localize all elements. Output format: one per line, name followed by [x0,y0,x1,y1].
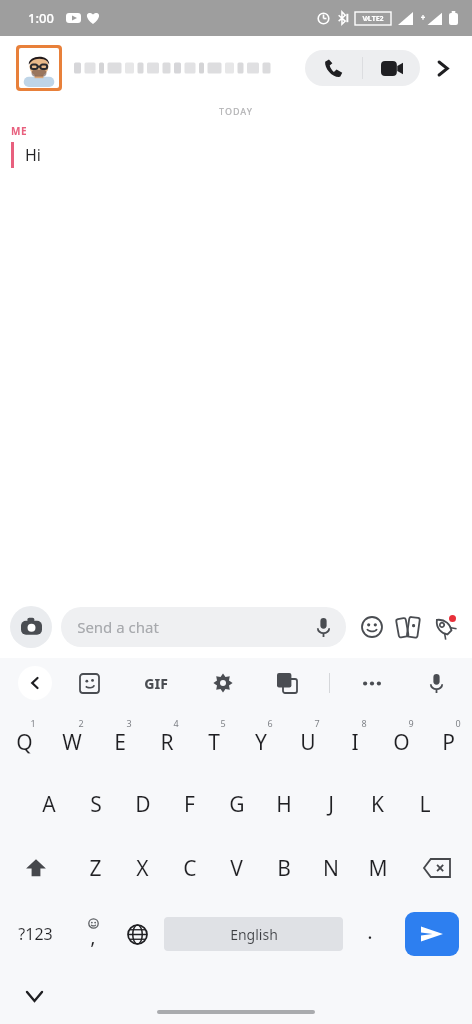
button[interactable]: Z [72,836,119,900]
button[interactable]: Back [18,666,52,700]
staticText: Y [255,728,267,757]
button[interactable]: Cards [390,609,426,645]
button[interactable]: Shift [0,836,72,900]
button[interactable]: GIF [133,663,179,703]
button[interactable]: 3 [96,708,143,772]
button[interactable]: 5 [190,708,237,772]
button[interactable]: Stickers [354,609,390,645]
button[interactable]: L [401,772,448,836]
button[interactable]: More options [352,663,392,703]
staticText: 6 [267,717,273,729]
button[interactable]: H [260,772,307,836]
staticText: S [90,790,102,819]
staticText: P [442,728,455,757]
staticText: 1:00 [28,9,54,27]
staticText: U [300,728,316,757]
staticText: GIF [144,674,168,693]
staticText: O [393,728,410,757]
staticText: H [276,790,292,819]
button[interactable]: Hide keyboard [16,978,52,1014]
staticText: TODAY [219,105,253,117]
button[interactable]: J [307,772,354,836]
staticText: ME [11,124,27,138]
staticText: R [160,728,174,757]
button[interactable]: ?123 [0,900,70,968]
staticText: English [230,925,278,944]
button[interactable]: 7 [284,708,331,772]
button[interactable]: Settings [203,663,243,703]
staticText: Q [16,728,33,757]
button[interactable]: 2 [48,708,96,772]
staticText: 5 [220,717,226,729]
staticText: Hi [25,144,41,166]
staticText: 2 [78,717,84,729]
staticText: ?123 [18,923,53,945]
button[interactable]: 0 [425,708,472,772]
button[interactable]: N [307,836,354,900]
button[interactable]: Profile avatar [19,48,59,88]
staticText: C [183,854,197,883]
staticText: B [277,854,291,883]
button[interactable]: English [164,917,343,951]
staticText: I [351,728,359,757]
staticText: 0 [455,717,461,729]
button[interactable]: 8 [331,708,378,772]
button[interactable]: X [119,836,166,900]
staticText: W [62,728,82,757]
staticText: 9 [408,717,414,729]
button[interactable]: Video call [363,50,420,86]
button[interactable]: Change language [115,900,160,968]
button[interactable]: 9 [378,708,425,772]
button[interactable]: B [260,836,307,900]
button[interactable]: Camera [10,606,52,648]
staticText: 1 [30,717,36,729]
button[interactable]: 6 [237,708,284,772]
staticText: X [136,854,149,883]
staticText: D [135,790,151,819]
button[interactable]: S [72,772,119,836]
staticText: 8 [361,717,367,729]
staticText: 7 [314,717,320,729]
button[interactable]: Emoji and comma [70,900,115,968]
staticText: J [328,790,334,819]
button[interactable]: V [213,836,260,900]
staticText: F [184,790,195,819]
staticText: Z [89,854,102,883]
button[interactable]: Rocket [426,609,462,645]
button[interactable]: D [119,772,166,836]
button[interactable]: G [213,772,260,836]
staticText: N [323,854,339,883]
button[interactable]: Translate [267,663,307,703]
staticText: 3 [126,717,132,729]
button[interactable]: K [354,772,401,836]
staticText: V⁄LTE2 [362,14,384,24]
staticText: . [367,918,373,945]
button[interactable]: Send [392,900,472,968]
button[interactable]: Voice call [305,50,362,86]
button[interactable]: Voice input [416,663,456,703]
staticText: L [419,790,431,819]
button[interactable]: Backspace [401,836,472,900]
staticText: Send a chat [77,617,159,637]
staticText: 4 [173,717,179,729]
staticText: , [90,923,96,950]
button[interactable]: C [166,836,213,900]
button[interactable]: 4 [143,708,190,772]
button[interactable]: 1 [0,708,48,772]
staticText: T [208,728,220,757]
staticText: E [114,728,126,757]
button[interactable]: Send a chat [61,607,346,647]
staticText: V [230,854,243,883]
button[interactable]: . [347,900,392,968]
button[interactable]: Sticker [69,663,109,703]
button[interactable]: F [166,772,213,836]
staticText: G [229,790,245,819]
button[interactable]: M [354,836,401,900]
staticText: A [42,790,56,819]
staticText: K [371,790,384,819]
button[interactable]: A [25,772,72,836]
staticText: M [368,854,388,883]
button[interactable]: More [422,48,462,88]
